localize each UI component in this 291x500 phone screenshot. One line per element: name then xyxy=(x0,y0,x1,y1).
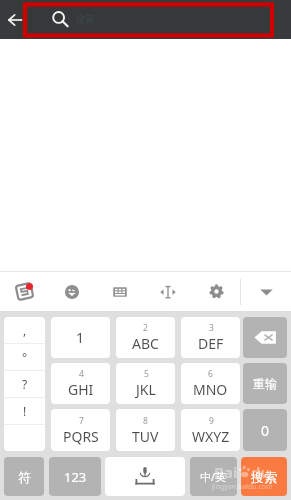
staticText: 6 xyxy=(208,368,213,380)
button[interactable]: 重输 xyxy=(243,363,287,404)
button[interactable]: , xyxy=(4,317,45,343)
staticText: 搜索 xyxy=(75,13,95,26)
button[interactable]: ! xyxy=(4,398,45,424)
staticText: 9 xyxy=(209,415,214,427)
button[interactable]: Keyboard layout xyxy=(96,272,144,311)
staticText: 搜索 xyxy=(251,469,277,485)
staticText: 2 xyxy=(143,322,148,334)
staticText: 0 xyxy=(261,421,270,440)
staticText: 3 xyxy=(209,322,214,334)
staticText: 符 xyxy=(18,469,31,485)
staticText: JKL xyxy=(136,380,156,399)
staticText: WXYZ xyxy=(192,427,230,446)
staticText: GHI xyxy=(68,380,94,399)
button[interactable]: 符 xyxy=(4,457,44,496)
staticText: ° xyxy=(22,349,28,365)
button[interactable]: 1 xyxy=(51,317,110,358)
button[interactable]: 8 xyxy=(116,409,175,451)
button[interactable]: ° xyxy=(4,344,45,370)
button[interactable]: Backspace xyxy=(243,317,287,358)
staticText: ABC xyxy=(132,334,159,353)
button[interactable]: 4 xyxy=(51,363,110,404)
staticText: 123 xyxy=(64,468,87,486)
button[interactable]: 3 xyxy=(181,317,240,358)
button[interactable]: 5 xyxy=(116,363,175,404)
button[interactable]: Space xyxy=(105,457,185,496)
staticText: , xyxy=(23,322,27,338)
button[interactable]: 9 xyxy=(181,409,240,451)
button[interactable]: Hide keyboard xyxy=(241,272,291,311)
staticText: DEF xyxy=(198,334,224,353)
button[interactable]: Settings xyxy=(192,272,240,311)
button[interactable]: ? xyxy=(4,371,45,397)
staticText: jingyan.baidu.com xyxy=(212,482,273,492)
staticText: ? xyxy=(22,376,28,392)
staticText: 中/英 xyxy=(200,469,227,484)
button[interactable]: 0 xyxy=(243,409,287,451)
staticText: 8 xyxy=(143,415,148,427)
staticText: TUV xyxy=(132,427,159,446)
button[interactable]: 6 xyxy=(181,363,240,404)
staticText: 5 xyxy=(144,368,149,380)
button[interactable]: Move cursor xyxy=(144,272,192,311)
button[interactable]: 中/英 xyxy=(190,457,237,496)
staticText: 1 xyxy=(76,328,85,347)
button[interactable]: 123 xyxy=(49,457,101,496)
staticText: du xyxy=(251,462,271,482)
button[interactable]: 2 xyxy=(116,317,175,358)
button[interactable]: 搜索 xyxy=(241,457,287,496)
staticText: PQRS xyxy=(63,427,99,446)
button[interactable]: 搜索 xyxy=(27,5,272,34)
staticText: Bai xyxy=(214,462,238,482)
staticText: 7 xyxy=(79,415,84,427)
button[interactable]: Emoji xyxy=(48,272,96,311)
button[interactable]: 7 xyxy=(51,409,110,451)
staticText: 4 xyxy=(79,368,84,380)
staticText: 重输 xyxy=(253,376,277,391)
button[interactable]: Sogou xyxy=(0,272,48,311)
staticText: ! xyxy=(23,403,27,419)
staticText: MNO xyxy=(193,380,228,399)
button[interactable]: Back xyxy=(2,0,28,39)
